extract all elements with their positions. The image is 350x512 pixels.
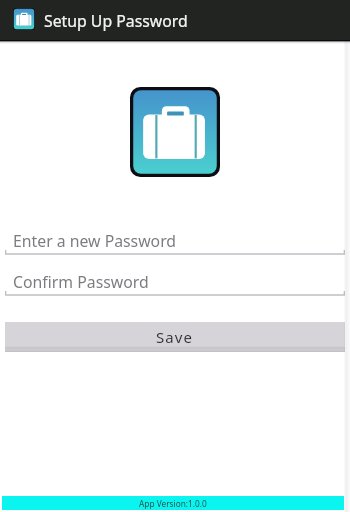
- other: App icon: [130, 87, 220, 177]
- button[interactable]: Confirm Password: [5, 271, 345, 299]
- staticText: App Version:1.0.0: [139, 498, 207, 509]
- button[interactable]: App Version:1.0.0: [2, 496, 344, 510]
- button[interactable]: App icon: [0, 0, 350, 41]
- staticText: Save: [156, 327, 194, 347]
- button[interactable]: Enter a new Password: [5, 230, 345, 258]
- other: App icon: [13, 8, 35, 30]
- staticText: Confirm Password: [13, 271, 149, 293]
- staticText: Enter a new Password: [13, 230, 177, 252]
- staticText: Setup Up Password: [44, 10, 188, 32]
- button[interactable]: Save: [5, 322, 345, 352]
